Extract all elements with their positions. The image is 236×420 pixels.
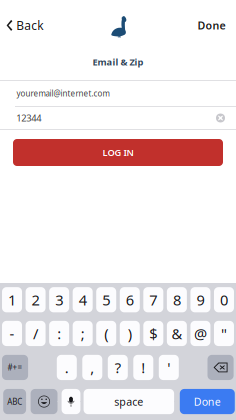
staticText: 3 [55,290,63,309]
staticText: 5 [102,290,110,309]
staticText: / [33,324,38,343]
staticText: @ [194,324,207,343]
button[interactable]: Back [0,5,51,45]
staticText: ( [104,324,108,343]
button[interactable]: Dictation [62,389,80,414]
button[interactable]: " [214,321,234,346]
button[interactable]: ' [159,355,179,380]
button[interactable]: Emoji [31,389,57,414]
staticText: ) [128,324,132,343]
staticText: Done [194,394,221,409]
staticText: " [221,324,227,343]
staticText: & [171,324,182,343]
button[interactable]: space [84,389,174,414]
staticText: 2 [32,290,40,309]
button[interactable]: ) [120,321,140,346]
button[interactable]: 6 [120,287,140,312]
staticText: - [9,324,14,343]
button[interactable]: . [57,355,77,380]
button[interactable]: 4 [73,287,93,312]
staticText: ABC [7,396,22,407]
button[interactable]: 2 [26,287,46,312]
button[interactable]: : [49,321,69,346]
button[interactable]: 9 [190,287,210,312]
button[interactable]: 7 [143,287,163,312]
staticText: . [65,358,69,377]
button[interactable]: LOG IN [13,139,223,166]
staticText: Email & Zip [92,56,143,68]
button[interactable]: ABC [3,389,26,414]
staticText: #+= [8,362,23,373]
staticText: space [114,394,143,409]
staticText: 8 [173,290,181,309]
staticText: 7 [149,290,157,309]
staticText: Back [16,17,43,33]
staticText: 9 [196,290,204,309]
staticText: 4 [79,290,87,309]
button[interactable]: & [167,321,187,346]
staticText: : [57,324,61,343]
staticText: 0 [220,290,228,309]
staticText: ' [167,358,170,377]
button[interactable]: ( [96,321,116,346]
button[interactable]: @ [190,321,210,346]
button[interactable]: 1 [2,287,22,312]
staticText: 1 [8,290,16,309]
button[interactable]: / [26,321,46,346]
button[interactable]: ! [133,355,153,380]
staticText: ! [141,358,145,377]
staticText: LOG IN [102,146,133,159]
staticText: youremail@internet.com [16,88,109,99]
button[interactable]: - [2,321,22,346]
staticText: ? [115,358,121,377]
button[interactable]: ? [108,355,128,380]
button[interactable]: Delete [207,355,234,380]
button[interactable]: ; [73,321,93,346]
staticText: , [90,358,94,377]
staticText: ; [81,324,85,343]
button[interactable]: Done [180,389,235,414]
button[interactable]: $ [143,321,163,346]
staticText: 12344 [16,112,41,124]
button[interactable]: 5 [96,287,116,312]
button[interactable]: #+= [2,355,28,380]
button[interactable]: 8 [167,287,187,312]
button[interactable]: Done [189,5,236,45]
button[interactable]: 3 [49,287,69,312]
button[interactable]: 0 [214,287,234,312]
staticText: $ [149,324,157,343]
staticText: 6 [126,290,134,309]
button[interactable]: , [82,355,102,380]
staticText: Done [197,18,225,32]
